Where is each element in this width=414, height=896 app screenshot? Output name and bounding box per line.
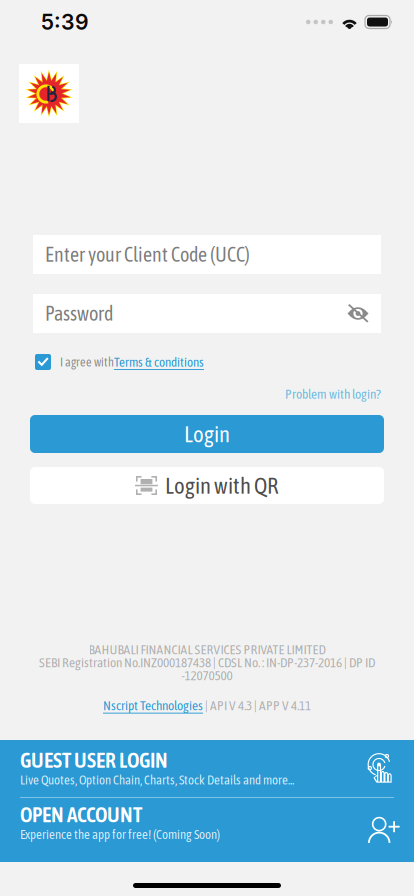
staticText: SEBI Registration No.INZ000187438 | CDSL… [39,655,375,670]
staticText: | API V 4.3 | APP V 4.11 [203,698,311,713]
staticText: Experience the app for free! (Coming Soo… [20,827,220,842]
staticText: BAHUBALI FINANCIAL SERVICES PRIVATE LIMI… [88,642,325,657]
button[interactable]: Login [30,415,384,453]
staticText: GUEST USER LOGIN [20,748,168,772]
staticText: -12070500 [181,668,232,683]
staticText: Nscript Technologies [103,698,203,713]
button[interactable]: Nscript Technologies [103,698,203,713]
staticText: OPEN ACCOUNT [20,802,142,827]
staticText: 5:39 [41,9,89,35]
staticText: Password [45,302,113,325]
staticText: Enter your Client Code (UCC) [45,243,250,266]
staticText: Login [184,421,230,447]
button[interactable]: OPEN ACCOUNT [0,798,414,862]
button[interactable]: Problem with login? [285,386,381,402]
staticText: Login with QR [165,472,278,498]
staticText: Live Quotes, Option Chain, Charts, Stock… [20,773,294,787]
staticText: Problem with login? [285,386,381,402]
staticText: Terms & conditions [114,354,204,369]
button[interactable]: I agree with [35,354,114,370]
staticText: I agree with [60,355,114,369]
button[interactable]: Login with QR [30,467,384,504]
button[interactable]: GUEST USER LOGIN [0,740,414,797]
button[interactable]: Terms & conditions [114,354,204,369]
